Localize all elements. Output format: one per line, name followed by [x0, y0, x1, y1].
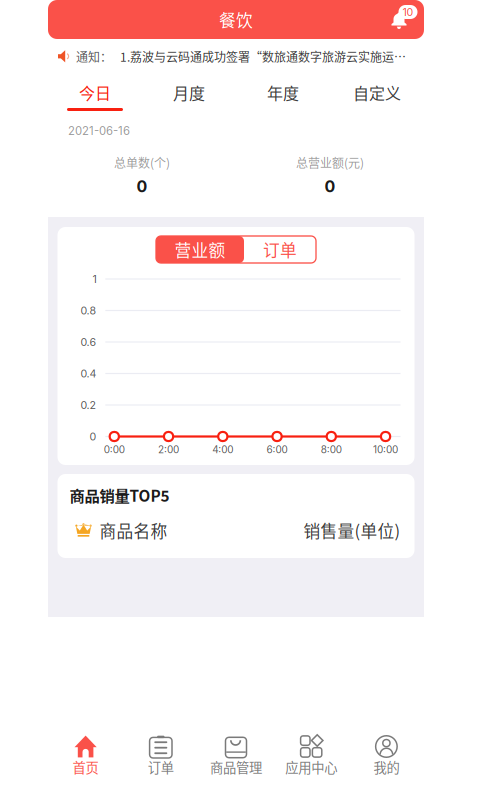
staticText: 1.荔波与云码通成功签署“数旅通数字旅游云实施运…: [120, 48, 406, 65]
staticText: 1: [92, 272, 96, 285]
staticText: 10: [402, 5, 413, 18]
button[interactable]: 订单: [244, 236, 316, 263]
staticText: 总单数(个): [114, 154, 170, 171]
button[interactable]: 月度: [142, 77, 236, 107]
staticText: 商品名称: [99, 518, 167, 542]
staticText: 0.6: [80, 335, 96, 348]
staticText: 通知：: [76, 48, 112, 65]
staticText: 10:00: [373, 443, 398, 456]
button[interactable]: Notifications: [382, 2, 416, 36]
staticText: 今日: [79, 81, 111, 104]
button[interactable]: 订单: [123, 727, 198, 785]
button[interactable]: 今日: [48, 77, 142, 107]
staticText: 月度: [173, 81, 205, 104]
staticText: 年度: [267, 81, 299, 104]
staticText: 8:00: [321, 443, 342, 456]
staticText: 我的: [373, 757, 399, 777]
staticText: 2021-06-16: [68, 124, 130, 138]
staticText: 订单: [263, 237, 297, 261]
staticText: 0.2: [80, 398, 96, 411]
staticText: 营业额: [174, 237, 225, 261]
staticText: 6:00: [267, 443, 288, 456]
staticText: 0: [136, 177, 147, 196]
staticText: 0: [324, 177, 335, 196]
button[interactable]: 应用中心: [274, 727, 349, 785]
staticText: 餐饮: [219, 7, 253, 31]
staticText: 应用中心: [285, 757, 337, 777]
staticText: 0.4: [80, 367, 96, 380]
staticText: 销售量(单位): [303, 518, 400, 542]
staticText: 0: [89, 430, 96, 443]
button[interactable]: 我的: [349, 727, 424, 785]
staticText: 自定义: [353, 81, 401, 104]
button[interactable]: 商品管理: [198, 727, 274, 785]
button[interactable]: 年度: [236, 77, 330, 107]
staticText: 0:00: [104, 443, 125, 456]
button[interactable]: 首页: [48, 727, 123, 785]
staticText: 商品销量TOP5: [69, 484, 169, 506]
staticText: 订单: [148, 757, 174, 777]
staticText: 0.8: [80, 304, 96, 317]
button[interactable]: 自定义: [330, 77, 424, 107]
staticText: 商品管理: [210, 757, 262, 777]
staticText: 总营业额(元): [296, 154, 364, 171]
staticText: 2:00: [158, 443, 179, 456]
staticText: 首页: [73, 757, 99, 777]
staticText: 4:00: [212, 443, 233, 456]
button[interactable]: 营业额: [156, 236, 244, 263]
